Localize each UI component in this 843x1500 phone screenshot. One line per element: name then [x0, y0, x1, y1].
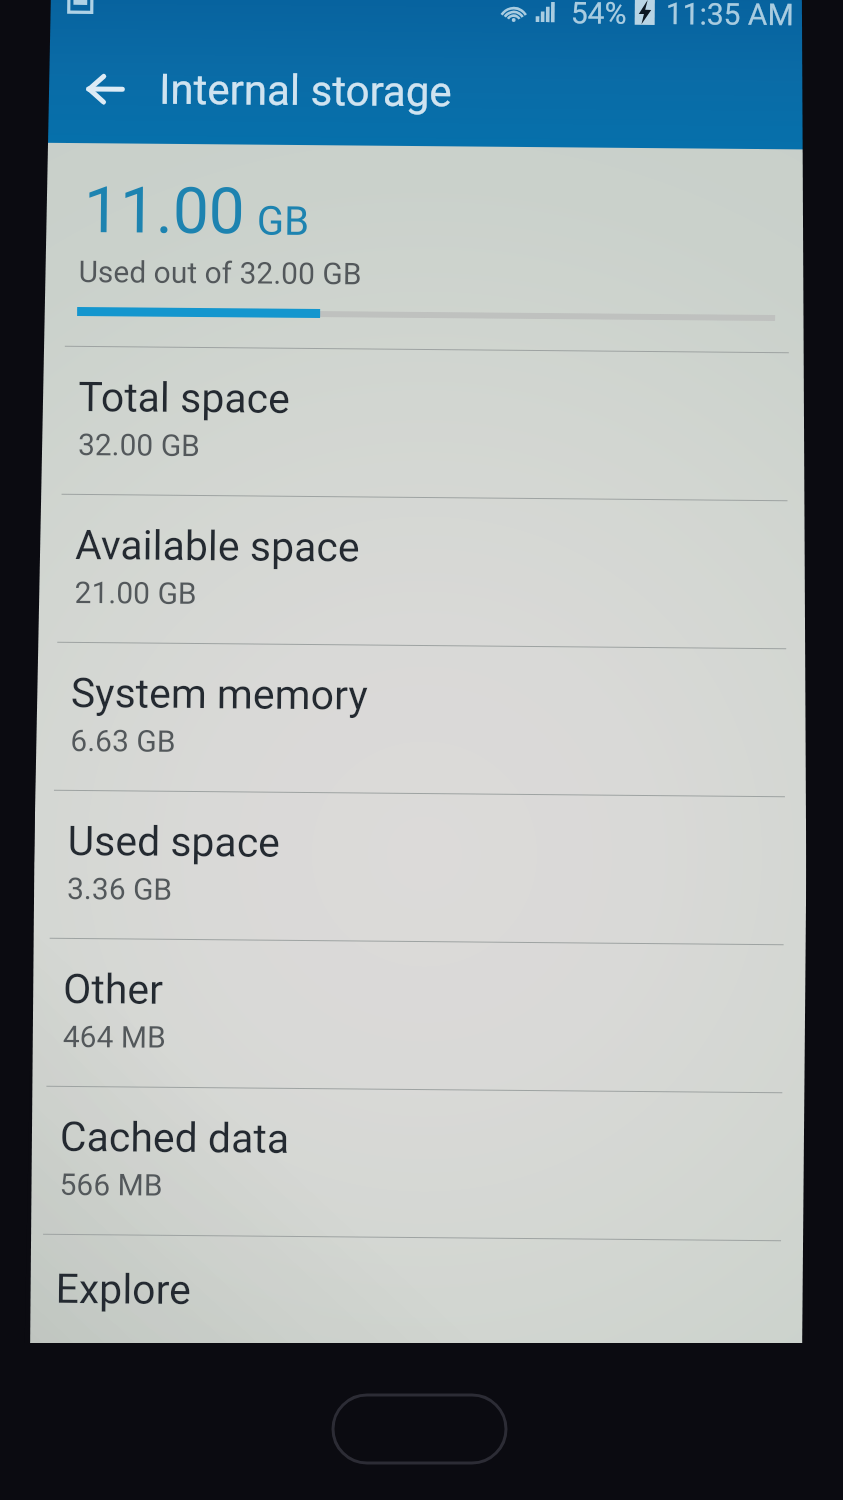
staticText: 11:35 AM — [666, 0, 794, 29]
staticText: 464 MB — [63, 1019, 166, 1055]
staticText: Other — [63, 965, 163, 1014]
button[interactable]: Other — [32, 939, 806, 1092]
staticText: 566 MB — [59, 1167, 163, 1203]
staticText: 11.00 — [84, 173, 245, 249]
button[interactable]: Navigate up — [77, 61, 133, 117]
button[interactable]: Cached data — [31, 1087, 804, 1240]
staticText: 54% — [571, 0, 627, 28]
staticText: 6.63 GB — [70, 723, 176, 759]
staticText: 21.00 GB — [74, 575, 197, 611]
staticText: GB — [257, 197, 310, 245]
staticText: Internal storage — [159, 65, 452, 116]
staticText: Used space — [67, 817, 281, 867]
button[interactable]: System memory — [35, 643, 808, 796]
staticText: Total space — [78, 373, 291, 423]
button[interactable]: Explore — [30, 1235, 803, 1356]
staticText: Available space — [75, 521, 360, 571]
button[interactable]: Total space — [37, 347, 811, 500]
staticText: 3.36 GB — [67, 871, 173, 907]
button[interactable]: Home — [333, 1395, 506, 1463]
button[interactable]: Available space — [36, 495, 810, 648]
staticText: Used out of 32.00 GB — [78, 254, 363, 291]
staticText: 32.00 GB — [78, 427, 200, 463]
staticText: Explore — [55, 1265, 192, 1314]
staticText: Cached data — [60, 1113, 290, 1163]
staticText: System memory — [71, 669, 368, 719]
button[interactable]: Used space — [34, 791, 807, 944]
